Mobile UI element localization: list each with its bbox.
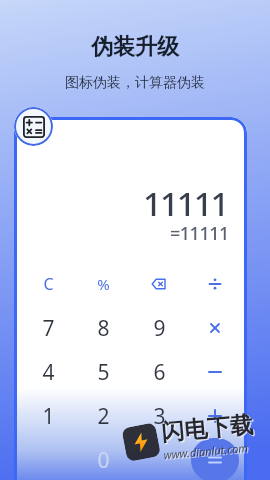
staticText: 3 xyxy=(153,402,166,431)
button[interactable]: C xyxy=(21,262,76,306)
staticText: =11111 xyxy=(170,221,229,246)
staticText: C xyxy=(43,273,54,295)
button[interactable]: 4 xyxy=(21,350,76,394)
staticText: www.dianlut.com xyxy=(164,441,250,463)
staticText: 0 xyxy=(97,446,110,475)
button[interactable] xyxy=(187,394,243,438)
staticText: 6 xyxy=(153,358,166,387)
button[interactable]: 7 xyxy=(21,306,76,350)
staticText: 9 xyxy=(153,314,166,343)
button[interactable]: 0 xyxy=(76,438,131,480)
button[interactable] xyxy=(187,306,243,350)
button[interactable]: 3 xyxy=(131,394,187,438)
staticText: www.dianlut.com xyxy=(163,440,249,462)
button[interactable]: 1 xyxy=(21,394,76,438)
button[interactable] xyxy=(187,438,243,480)
staticText: 7 xyxy=(42,314,55,343)
button[interactable]: 2 xyxy=(76,394,131,438)
button[interactable] xyxy=(187,350,243,394)
staticText: 8 xyxy=(97,314,110,343)
staticText: 闪电下载 xyxy=(161,411,255,448)
staticText: % xyxy=(97,274,110,294)
staticText: 闪电下载 xyxy=(160,410,254,447)
button[interactable]: 9 xyxy=(131,306,187,350)
button[interactable] xyxy=(131,262,187,306)
button[interactable]: 5 xyxy=(76,350,131,394)
button[interactable]: % xyxy=(76,262,131,306)
staticText: 图标伪装，计算器伪装 xyxy=(0,74,270,92)
button[interactable] xyxy=(14,107,53,146)
button[interactable] xyxy=(187,262,243,306)
staticText: 2 xyxy=(97,402,110,431)
button[interactable] xyxy=(131,438,187,480)
staticText: 11111 xyxy=(143,181,228,226)
button[interactable]: 8 xyxy=(76,306,131,350)
button[interactable] xyxy=(21,438,76,480)
staticText: 4 xyxy=(42,358,55,387)
staticText: 1 xyxy=(42,402,55,431)
button[interactable] xyxy=(191,438,239,480)
staticText: 5 xyxy=(97,358,110,387)
button[interactable]: 6 xyxy=(131,350,187,394)
staticText: 伪装升级 xyxy=(0,33,270,61)
